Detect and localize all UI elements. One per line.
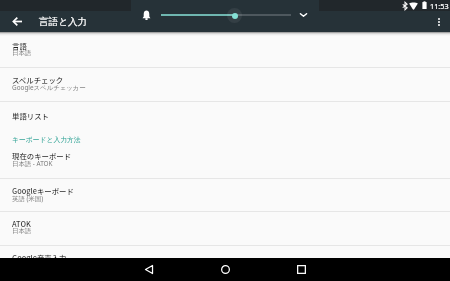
button[interactable]: Google音声入力 bbox=[0, 246, 450, 281]
button[interactable]: Home bbox=[187, 258, 263, 281]
staticText: 英語 (米国) bbox=[12, 194, 44, 203]
button[interactable]: Back bbox=[0, 11, 34, 32]
button[interactable]: Recent apps bbox=[263, 258, 339, 281]
button[interactable]: 現在のキーボード bbox=[0, 144, 450, 178]
button[interactable]: 言語 bbox=[0, 32, 450, 67]
staticText: 日本語 - ATOK bbox=[12, 159, 53, 168]
button[interactable]: スペルチェック bbox=[0, 68, 450, 101]
button[interactable]: Expand volume controls bbox=[295, 0, 311, 30]
staticText: ATOK bbox=[12, 218, 31, 229]
staticText: Googleキーボード bbox=[12, 185, 74, 196]
staticText: 日本語 bbox=[12, 227, 32, 235]
button[interactable]: ATOK bbox=[0, 212, 450, 245]
staticText: 現在のキーボード bbox=[12, 150, 72, 161]
button[interactable]: 単語リスト bbox=[0, 102, 450, 128]
staticText: スペルチェック bbox=[12, 74, 64, 85]
staticText: 言語と入力 bbox=[39, 16, 88, 28]
button[interactable]: Back bbox=[111, 258, 187, 281]
staticText: 日本語 bbox=[12, 49, 32, 57]
staticText: 単語リスト bbox=[12, 110, 49, 121]
button[interactable]: More options bbox=[428, 11, 450, 32]
staticText: 11:53 bbox=[430, 1, 449, 11]
staticText: Google音声入力 bbox=[12, 252, 67, 263]
staticText: キーボードと入力方法 bbox=[12, 135, 81, 144]
staticText: 言語 bbox=[12, 40, 27, 51]
staticText: Googleスペルチェッカー bbox=[12, 83, 86, 92]
button[interactable]: Googleキーボード bbox=[0, 179, 450, 211]
